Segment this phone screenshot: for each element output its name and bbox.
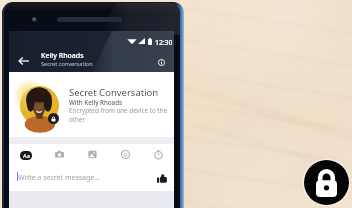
button[interactable]: Camera <box>52 147 66 161</box>
staticText: Secret Conversation <box>69 86 159 99</box>
staticText: Encrypted from one device to the other <box>69 106 168 124</box>
button[interactable]: Text formatting <box>20 151 32 160</box>
button[interactable]: Disappearing messages <box>151 147 165 161</box>
staticText: Secret conversation <box>41 60 93 68</box>
button[interactable]: Stickers <box>118 147 132 161</box>
staticText: Kelly Rhoads <box>41 51 84 61</box>
staticText: Write a secret message... <box>18 173 100 183</box>
button[interactable]: Photos <box>85 147 99 161</box>
staticText: 12:30 <box>155 38 173 47</box>
button[interactable]: Send a like <box>154 170 170 186</box>
button[interactable]: Back <box>14 51 33 70</box>
staticText: With Kelly Rhoads <box>69 98 122 106</box>
button[interactable]: Conversation details <box>152 53 171 72</box>
staticText: Aa <box>23 152 30 160</box>
button[interactable]: End-to-end encrypted <box>304 160 349 205</box>
